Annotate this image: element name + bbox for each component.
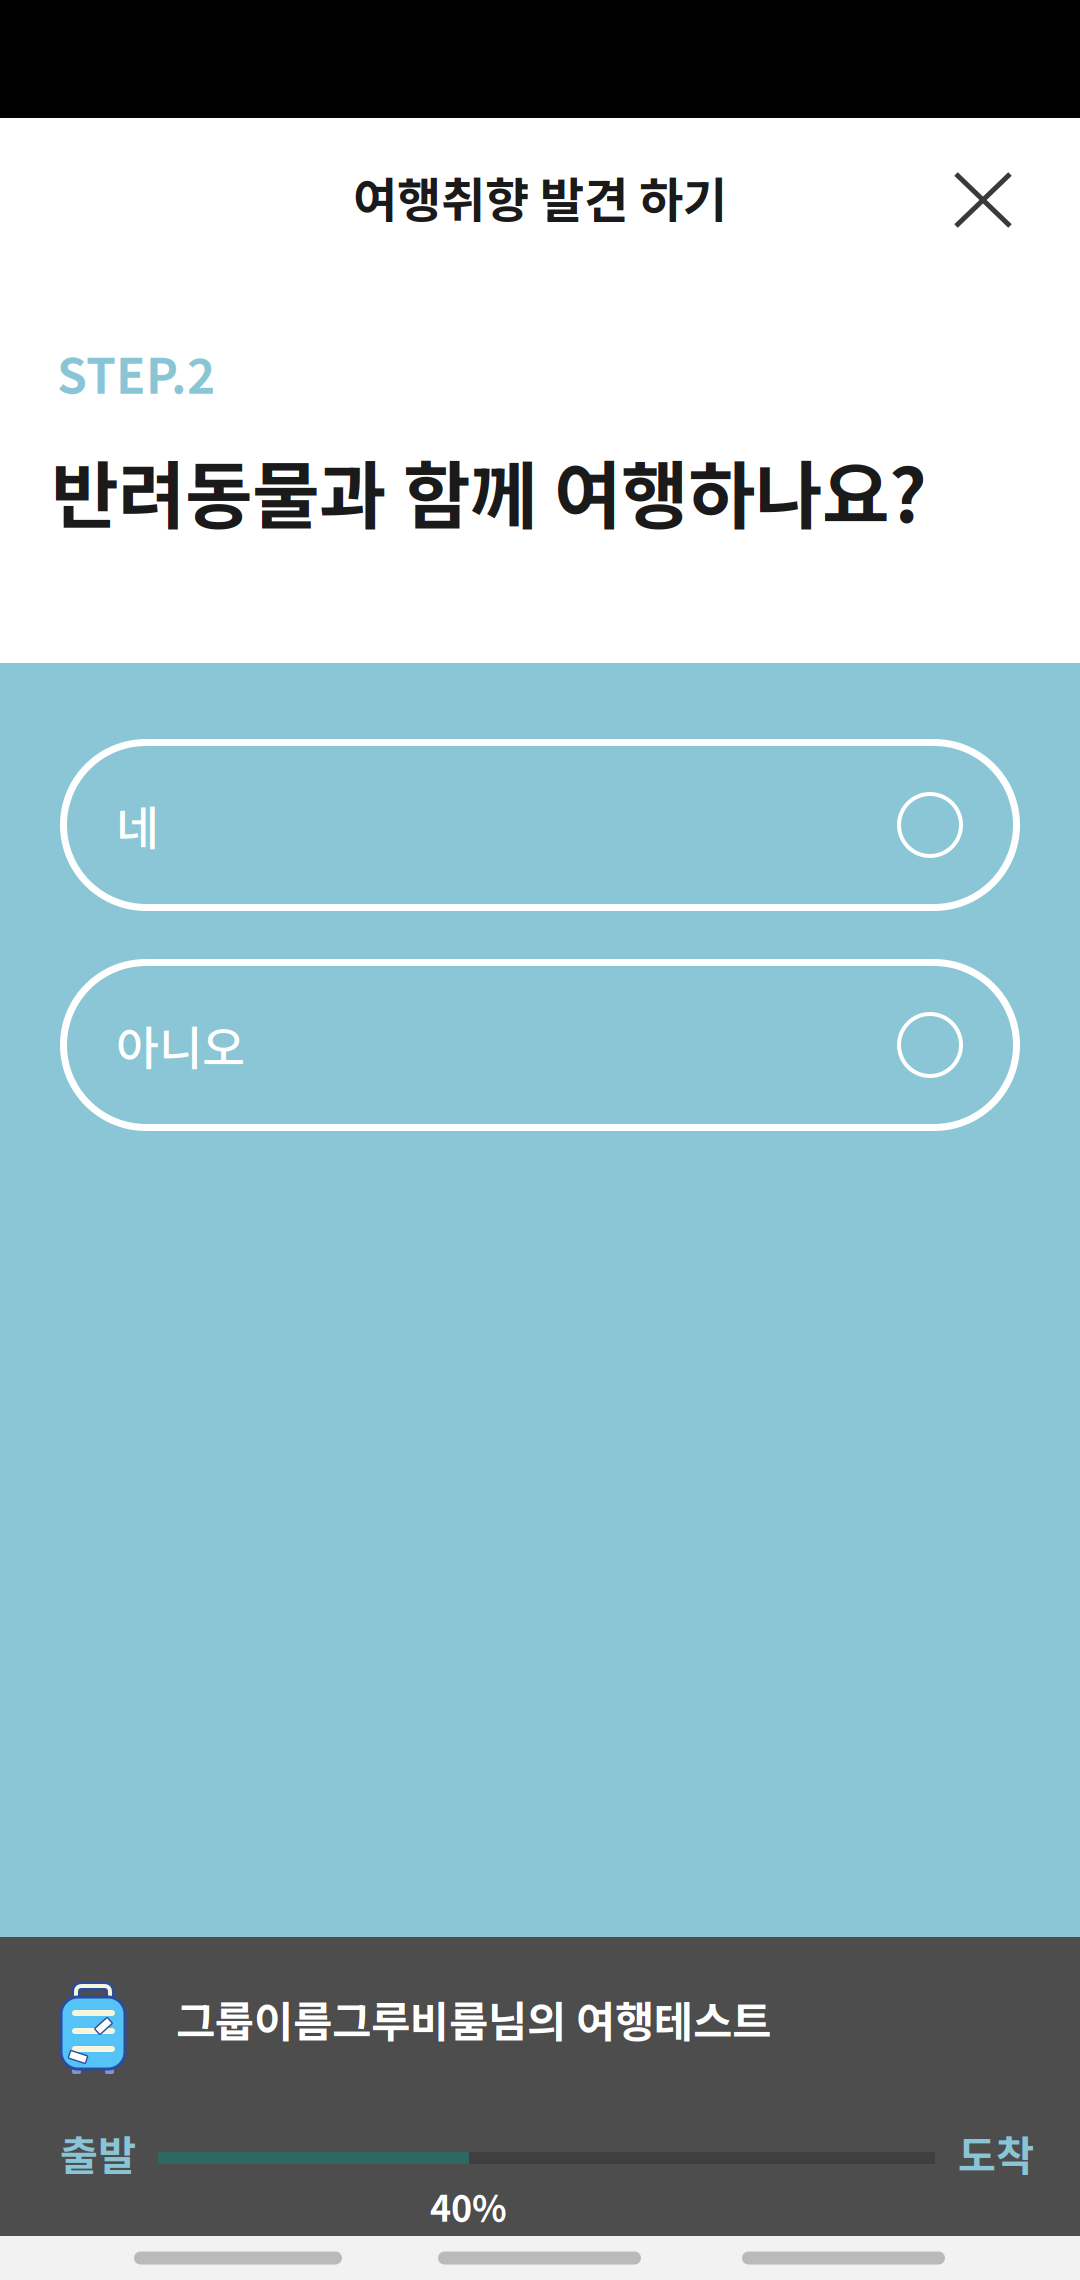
staticText: 그룹이름그루비룸님의 여행테스트	[176, 1988, 771, 2050]
staticText: 아니오	[116, 1011, 245, 1079]
staticText: 도착	[958, 2123, 1034, 2183]
staticText: 네	[116, 791, 159, 859]
staticText: 반려동물과 함께 여행하나요?	[51, 437, 927, 544]
staticText: STEP.2	[57, 338, 215, 407]
button[interactable]: 네	[60, 739, 1020, 911]
button[interactable]: 아니오	[60, 959, 1020, 1131]
staticText: 여행취향 발견 하기	[353, 162, 727, 232]
button[interactable]: Close	[939, 153, 1027, 239]
staticText: 출발	[60, 2123, 136, 2183]
staticText: 40%	[430, 2180, 507, 2232]
